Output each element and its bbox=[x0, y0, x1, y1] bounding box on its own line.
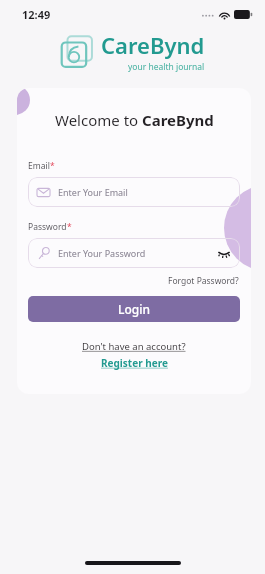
staticText: * bbox=[67, 221, 72, 233]
staticText: Password bbox=[28, 221, 67, 233]
button[interactable]: Don't have an account? bbox=[82, 340, 186, 353]
staticText: Enter Your Password bbox=[58, 247, 146, 259]
staticText: Register here bbox=[101, 356, 168, 370]
staticText: your health journal bbox=[128, 61, 205, 73]
button[interactable]: Show password bbox=[217, 246, 231, 260]
staticText: Welcome to CareBynd bbox=[55, 110, 214, 130]
staticText: 12:49 bbox=[22, 7, 51, 22]
button[interactable]: Enter Your Password bbox=[28, 238, 240, 268]
staticText: Email bbox=[28, 160, 50, 172]
staticText: Don't have an account? bbox=[82, 340, 186, 353]
staticText: * bbox=[50, 160, 55, 172]
button[interactable]: Register here bbox=[101, 356, 168, 370]
staticText: CareBynd bbox=[101, 30, 205, 60]
button[interactable]: Forgot Password? bbox=[168, 275, 239, 287]
button[interactable]: Login bbox=[28, 296, 240, 322]
staticText: Enter Your Email bbox=[58, 186, 128, 198]
staticText: Login bbox=[118, 301, 150, 317]
button[interactable]: Enter Your Email bbox=[28, 177, 240, 207]
staticText: Forgot Password? bbox=[168, 275, 239, 287]
